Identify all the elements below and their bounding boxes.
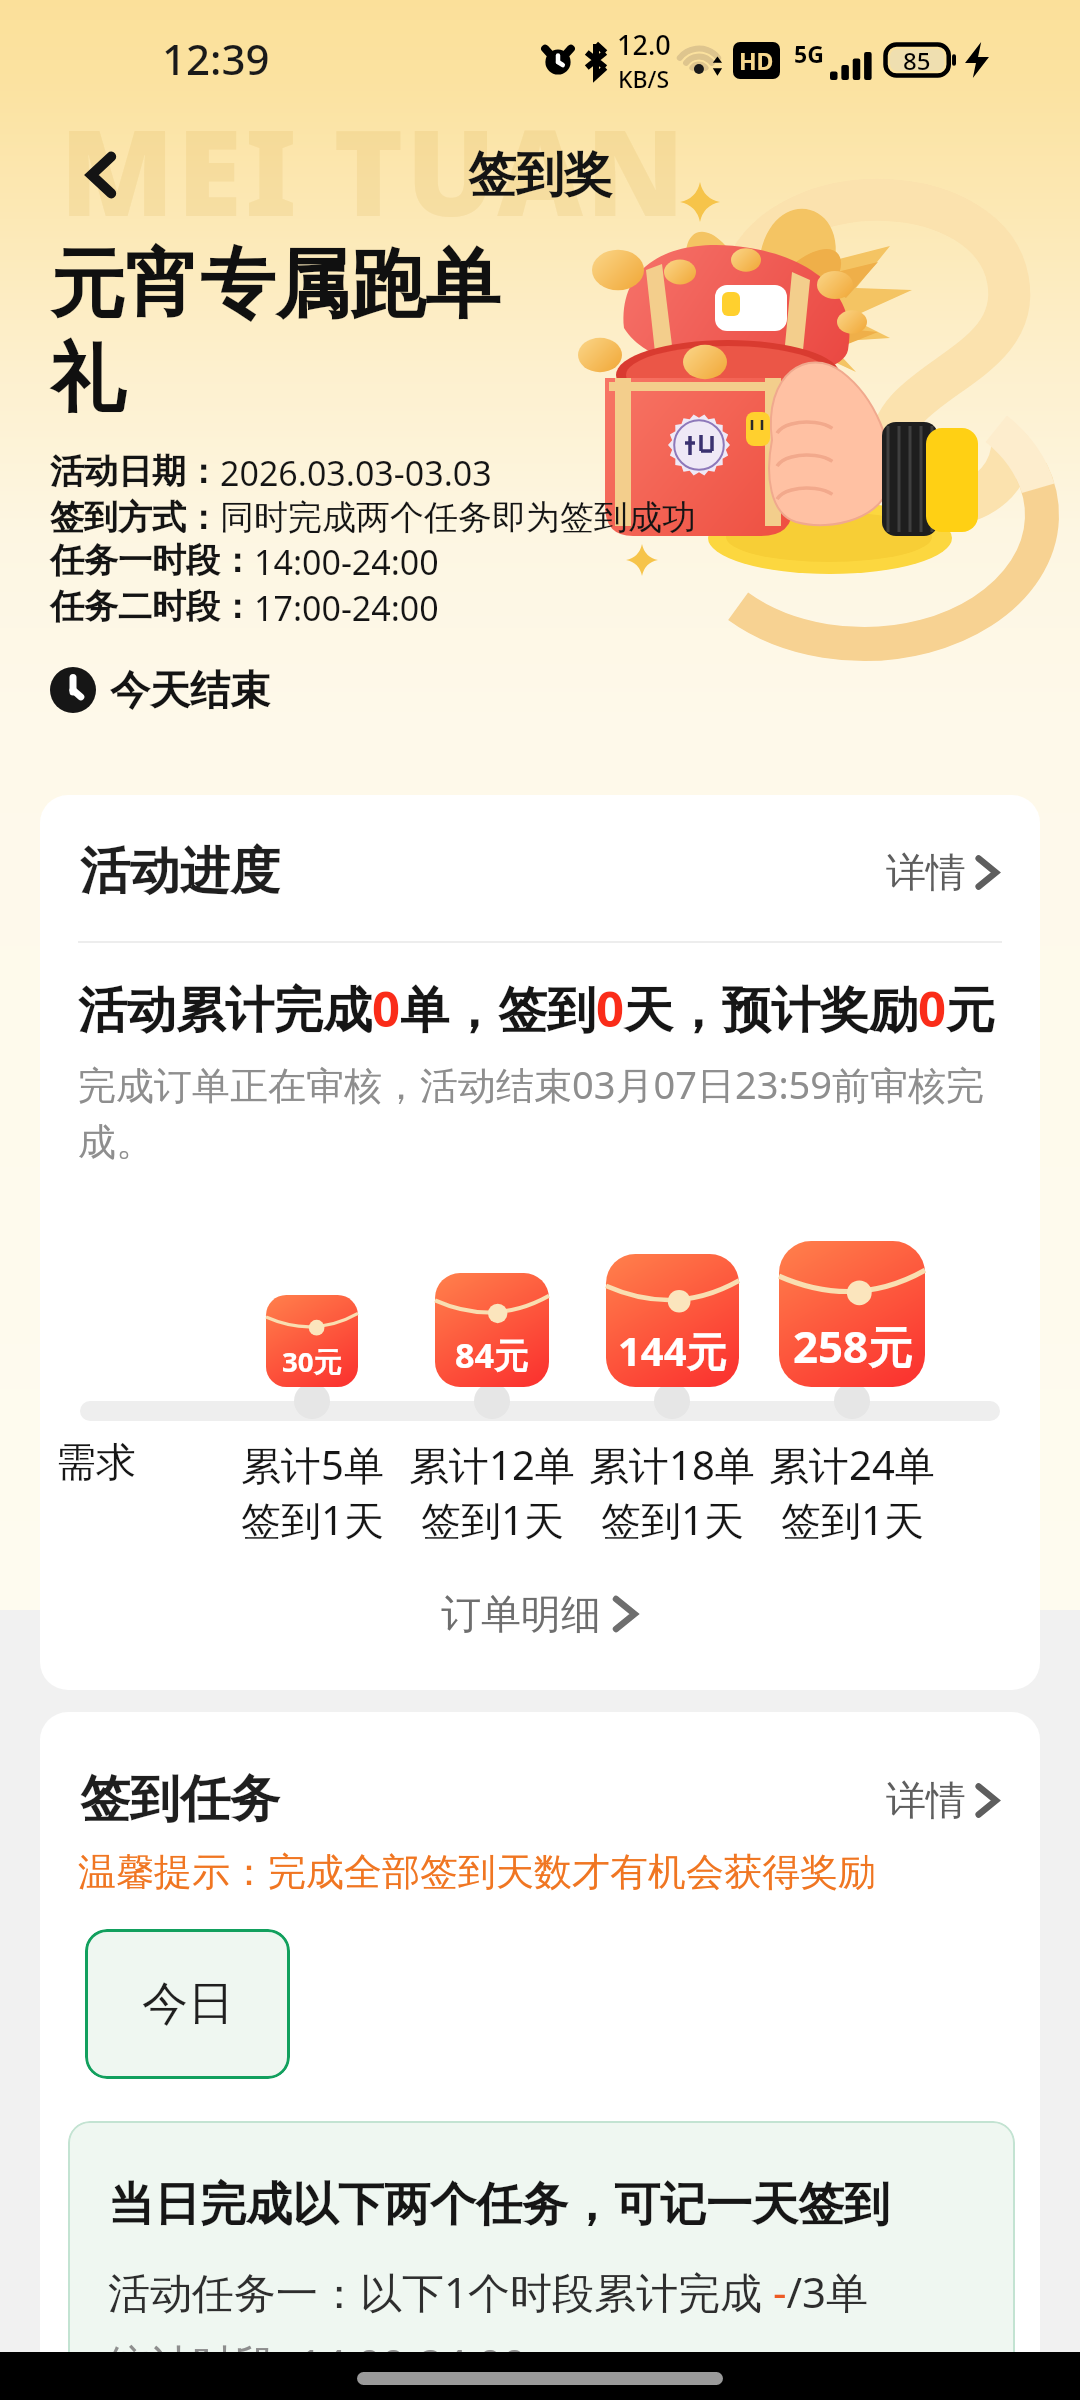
- staticText: 当日完成以下两个任务，可记一天签到: [108, 2176, 890, 2234]
- staticText: MEI TUAN: [60, 90, 688, 251]
- staticText: 144元: [618, 1323, 727, 1377]
- staticText: 签到奖: [468, 145, 612, 205]
- staticText: 签到方式：: [50, 496, 220, 539]
- staticText: 12.0: [617, 26, 671, 63]
- staticText: 活动累计完成0单，签到0天，预计奖励0元: [78, 975, 996, 1042]
- button[interactable]: 详情: [882, 1771, 1004, 1829]
- staticText: 完成订单正在审核，活动结束03月07日23:59前审核完成。: [78, 1058, 998, 1166]
- staticText: 累计24单: [769, 1437, 935, 1492]
- staticText: 活动任务一：以下1个时段累计完成 -/3单: [108, 2263, 869, 2320]
- staticText: 同时完成两个任务即为签到成功: [220, 496, 696, 539]
- staticText: 任务一时段：: [50, 539, 254, 582]
- staticText: 今天结束: [110, 665, 270, 715]
- staticText: 12:39: [162, 30, 270, 87]
- staticText: 统计时段: 14:00-24:00: [108, 2335, 527, 2356]
- staticText: 温馨提示：完成全部签到天数才有机会获得奖励: [78, 1848, 876, 1896]
- staticText: 累计12单: [409, 1437, 575, 1492]
- staticText: 17:00-24:00: [254, 585, 439, 631]
- staticText: 需求: [56, 1437, 256, 1487]
- staticText: 累计18单: [589, 1437, 755, 1492]
- staticText: 活动日期：: [50, 450, 220, 493]
- staticText: 详情: [886, 847, 966, 897]
- staticText: 累计5单: [241, 1437, 384, 1492]
- staticText: 14:00-24:00: [254, 539, 439, 585]
- staticText: 订单明细: [441, 1589, 601, 1639]
- staticText: 礼: [50, 332, 125, 426]
- staticText: 2026.03.03-03.03: [220, 450, 492, 496]
- staticText: 84元: [455, 1331, 529, 1378]
- staticText: 258元: [793, 1316, 912, 1376]
- staticText: 详情: [886, 1775, 966, 1825]
- staticText: 签到1天: [241, 1492, 384, 1547]
- staticText: 签到1天: [781, 1492, 924, 1547]
- staticText: HD: [739, 45, 774, 76]
- staticText: 签到1天: [421, 1492, 564, 1547]
- staticText: 85: [903, 44, 931, 77]
- staticText: 元宵专属跑单: [50, 238, 500, 332]
- staticText: 任务二时段：: [50, 585, 254, 628]
- button[interactable]: Back: [62, 135, 142, 215]
- staticText: 30元: [282, 1342, 342, 1380]
- staticText: KB/S: [618, 63, 670, 94]
- staticText: 活动进度: [80, 840, 280, 903]
- staticText: 今日: [142, 1975, 234, 2033]
- button[interactable]: 订单明细: [40, 1585, 1040, 1643]
- button[interactable]: 今日: [85, 1929, 290, 2079]
- staticText: 签到任务: [80, 1768, 280, 1831]
- button[interactable]: 详情: [882, 843, 1004, 901]
- staticText: 签到1天: [601, 1492, 744, 1547]
- staticText: 5G: [794, 38, 824, 69]
